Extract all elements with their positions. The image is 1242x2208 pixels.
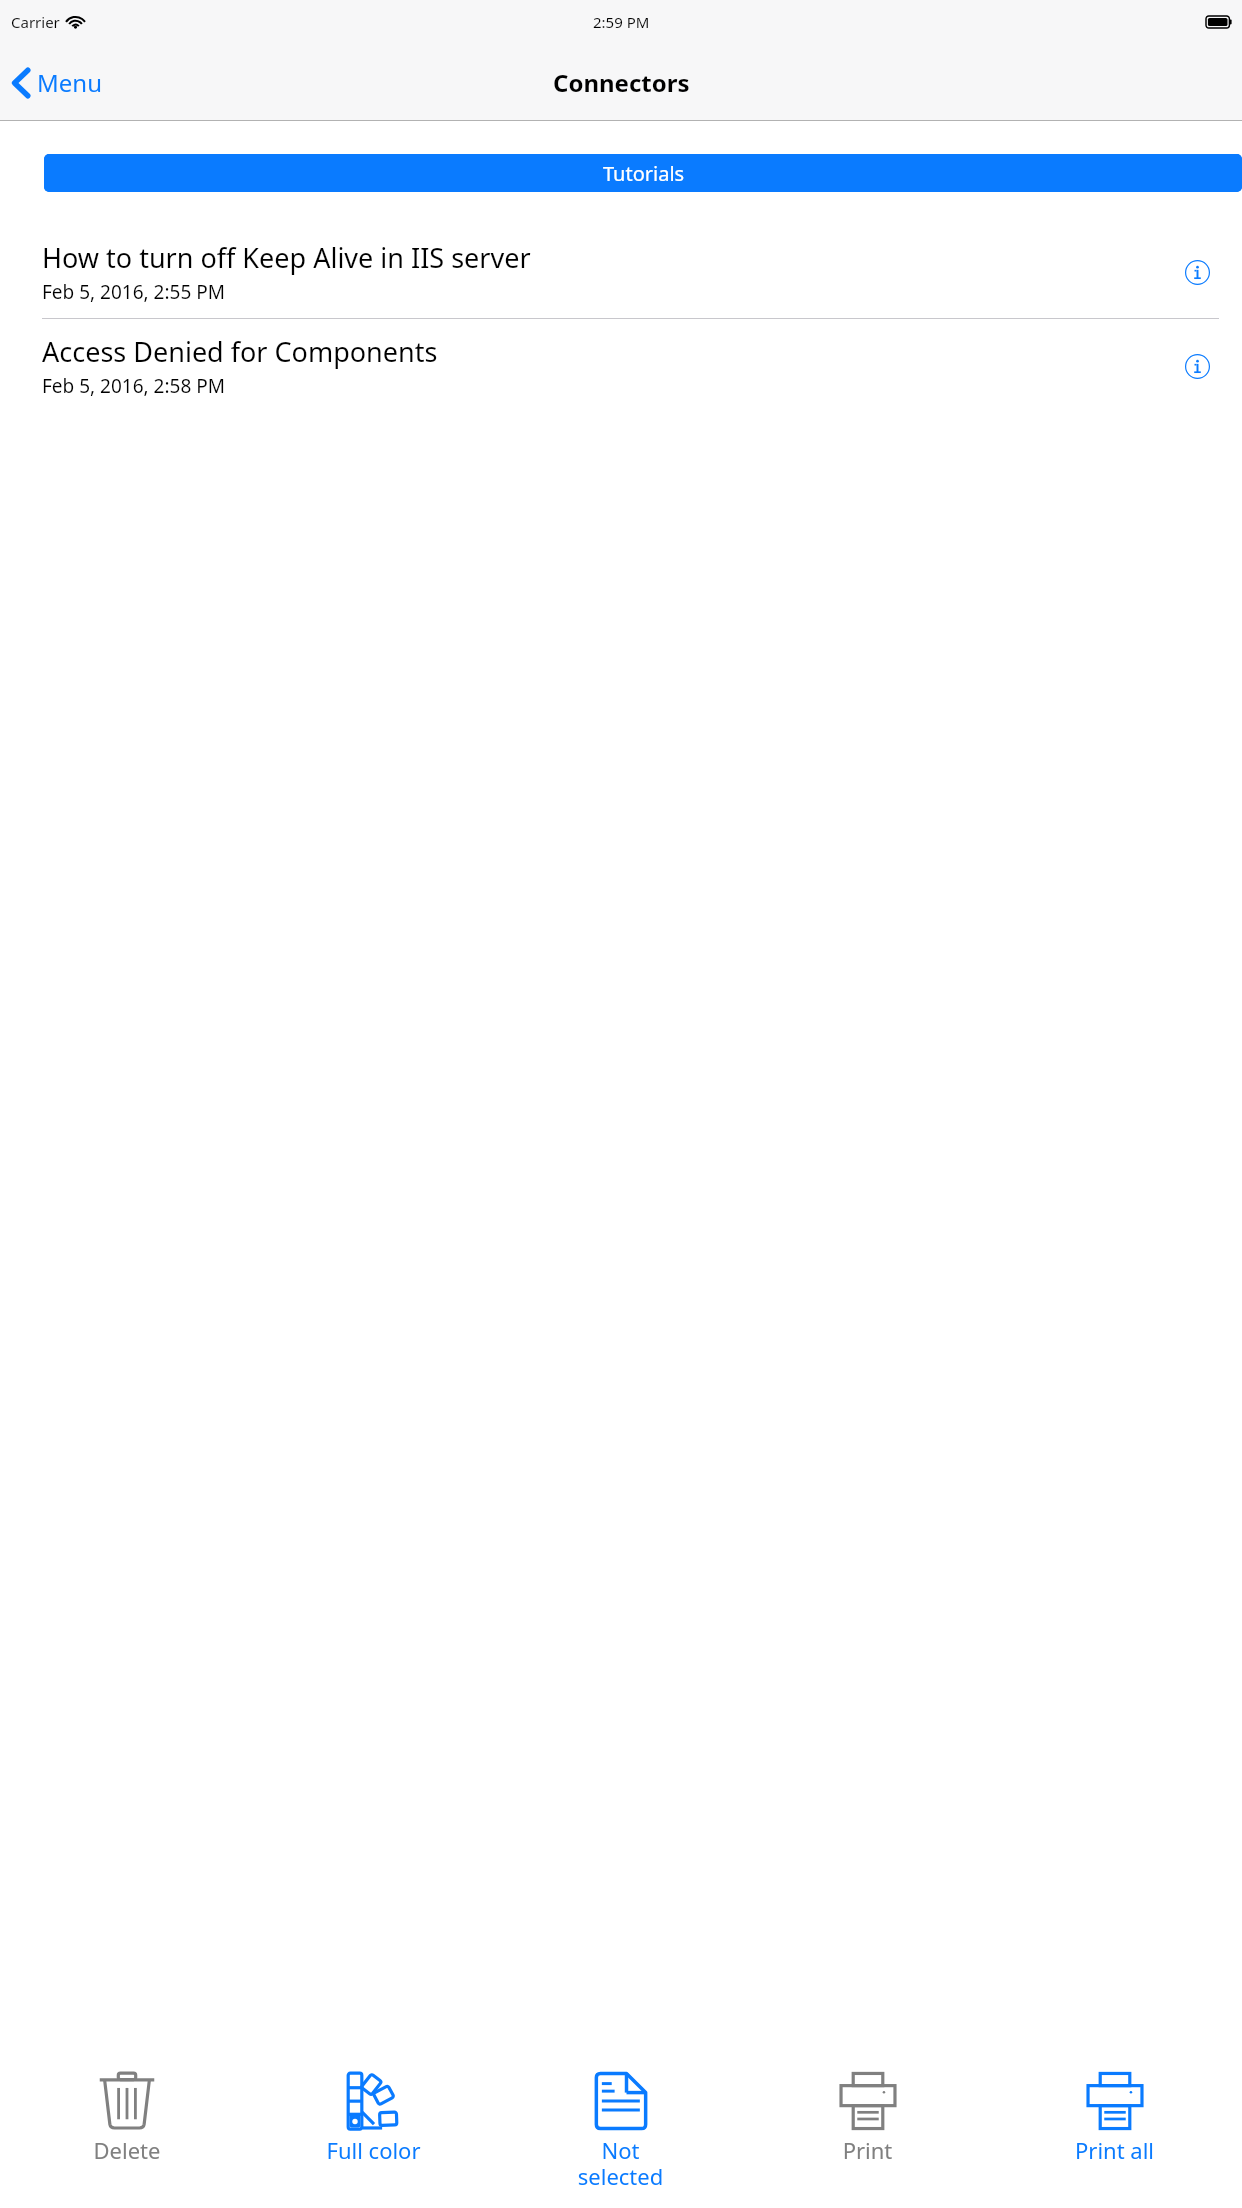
button[interactable]: More info [1174,249,1220,295]
button[interactable]: Tutorials [46,154,1242,192]
button[interactable]: Full color [250,2068,497,2165]
staticText: Carrier [11,12,60,32]
button[interactable]: More info [1174,343,1220,389]
staticText: Print all [991,2135,1238,2165]
button[interactable]: Access Denied for Components [0,319,1242,412]
staticText: Menu [37,66,102,99]
staticText: Feb 5, 2016, 2:58 PM [42,373,225,399]
staticText: Access Denied for Components [42,333,438,370]
staticText: Feb 5, 2016, 2:55 PM [42,279,225,305]
staticText: Not selected [497,2135,744,2192]
staticText: Delete [4,2135,250,2165]
staticText: Print [744,2135,991,2165]
staticText: How to turn off Keep Alive in IIS server [42,239,531,276]
button[interactable]: Delete [4,2068,250,2165]
button[interactable]: Menu [0,60,116,105]
staticText: Tutorials [603,160,685,187]
staticText: Full color [250,2135,497,2165]
button[interactable]: Print [744,2068,991,2165]
staticText: 2:59 PM [593,12,650,32]
staticText: Connectors [553,66,690,99]
button[interactable]: Not selected [497,2068,744,2192]
button[interactable]: Print all [991,2068,1238,2165]
button[interactable]: How to turn off Keep Alive in IIS server [0,225,1242,319]
